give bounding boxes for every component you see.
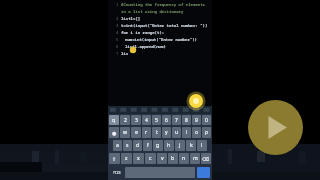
staticText: o — [195, 129, 199, 136]
staticText: list1.append(num) — [125, 44, 166, 49]
staticText: lis — [121, 51, 129, 56]
button[interactable]: 3 — [131, 115, 141, 125]
staticText: ● — [112, 130, 117, 136]
staticText: b — [171, 155, 175, 162]
staticText: 5 — [116, 37, 119, 42]
staticText: for i in range(t): — [121, 30, 165, 35]
staticText: j — [179, 142, 181, 149]
staticText: e — [135, 129, 138, 136]
staticText: u — [175, 129, 179, 136]
staticText: 6 — [165, 117, 168, 124]
button[interactable]: 2 — [120, 115, 130, 125]
button[interactable]: v — [157, 153, 167, 164]
button[interactable]: k — [186, 140, 196, 151]
staticText: d — [136, 142, 140, 149]
button[interactable]: t — [152, 127, 161, 138]
button[interactable]: 4 — [142, 115, 151, 125]
staticText: p — [205, 129, 209, 136]
staticText: 5 — [155, 117, 158, 124]
staticText: ⌫ — [202, 156, 210, 162]
button[interactable]: p — [202, 127, 211, 138]
button[interactable]: a — [113, 140, 122, 151]
button[interactable]: c — [145, 153, 156, 164]
button[interactable]: e — [131, 127, 141, 138]
button[interactable]: 7 — [172, 115, 181, 125]
staticText: c — [149, 155, 152, 162]
staticText: 7 — [116, 51, 119, 56]
staticText: 4 — [145, 117, 148, 124]
staticText: 2 — [124, 117, 127, 124]
staticText: h — [167, 142, 171, 149]
button[interactable]: g — [153, 140, 163, 151]
staticText: i — [186, 129, 188, 136]
staticText: 3 — [135, 117, 138, 124]
staticText: z — [125, 155, 128, 162]
staticText: 1 — [116, 2, 119, 7]
button[interactable]: ● — [109, 127, 119, 138]
button[interactable]: m — [190, 153, 200, 164]
staticText: s — [126, 142, 129, 149]
staticText: 0 — [205, 117, 208, 124]
staticText: r — [145, 129, 148, 136]
staticText: f — [147, 142, 149, 149]
button[interactable]: b — [168, 153, 178, 164]
staticText: in a list using dictionary — [121, 9, 184, 14]
button[interactable]: f — [143, 140, 152, 151]
button[interactable]: 8 — [182, 115, 191, 125]
button[interactable]: 1 — [108, 0, 212, 180]
button[interactable]: i — [182, 127, 191, 138]
button[interactable]: o — [192, 127, 201, 138]
button[interactable]: Play — [248, 100, 303, 155]
staticText: a — [116, 142, 119, 149]
staticText: q — [112, 117, 116, 124]
button[interactable]: r — [142, 127, 151, 138]
staticText: v — [161, 155, 164, 162]
button[interactable]: 5 — [152, 115, 161, 125]
staticText: list1=[] — [121, 16, 141, 21]
staticText: y — [165, 129, 168, 136]
staticText: k — [190, 142, 193, 149]
staticText: 9 — [195, 117, 198, 124]
button[interactable]: l — [197, 140, 207, 151]
button[interactable]: q — [109, 115, 119, 125]
button[interactable]: x — [133, 153, 144, 164]
button[interactable]: w — [120, 127, 130, 138]
button[interactable]: n — [179, 153, 189, 164]
button[interactable]: h — [164, 140, 174, 151]
staticText: 2 — [116, 16, 119, 21]
button[interactable]: ?123 — [109, 166, 124, 179]
staticText: t — [156, 129, 158, 136]
staticText: 8 — [185, 117, 188, 124]
staticText: num=int(input("Enter number")) — [125, 37, 197, 42]
button[interactable]: Enter — [197, 167, 210, 178]
staticText: 6 — [116, 44, 119, 49]
button[interactable]: 0 — [202, 115, 211, 125]
staticText: 4 — [116, 30, 119, 35]
button[interactable]: 9 — [192, 115, 201, 125]
staticText: #Counting the frequency of elements — [121, 2, 205, 7]
button[interactable]: z — [121, 153, 132, 164]
button[interactable]: s — [123, 140, 132, 151]
staticText: m — [193, 155, 198, 162]
button[interactable]: d — [133, 140, 142, 151]
staticText: n — [182, 155, 186, 162]
staticText: ⇧ — [112, 156, 117, 162]
staticText: t=int(input("Enter total number: ")) — [121, 23, 208, 28]
staticText: l — [201, 142, 203, 149]
button[interactable]: ⌫ — [201, 153, 211, 164]
staticText: w — [123, 129, 128, 136]
button[interactable]: 6 — [162, 115, 171, 125]
button[interactable]: ⇧ — [109, 153, 120, 164]
button[interactable]: y — [162, 127, 171, 138]
staticText: x — [137, 155, 140, 162]
staticText: 7 — [175, 117, 178, 124]
staticText: 3 — [116, 23, 119, 28]
staticText: g — [156, 142, 160, 149]
button[interactable]: j — [175, 140, 185, 151]
button[interactable]: u — [172, 127, 181, 138]
staticText: ?123 — [113, 170, 121, 175]
